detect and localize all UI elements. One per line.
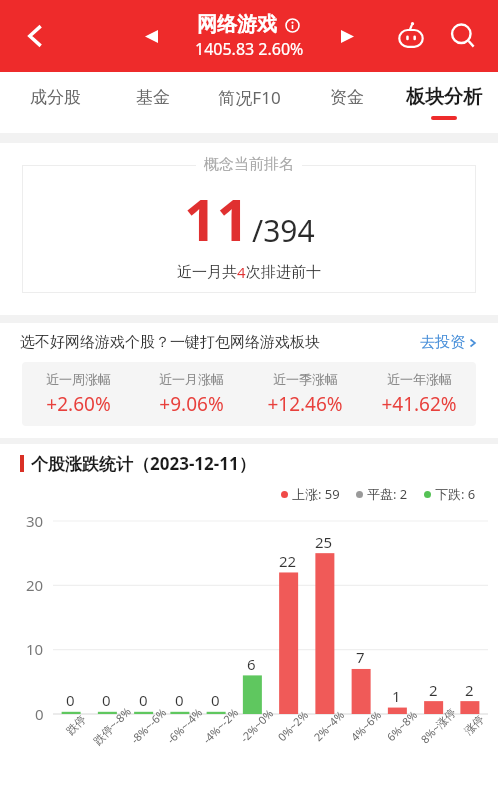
staticText: 上涨: 59: [292, 485, 340, 503]
button[interactable]: Previous sector: [131, 16, 171, 56]
staticText: +9.06%: [159, 391, 224, 417]
staticText: 简况F10: [218, 86, 281, 109]
button[interactable]: Next sector: [327, 16, 367, 56]
staticText: 0: [35, 704, 44, 724]
staticText: -6%~-4%: [163, 704, 206, 747]
staticText: 近一月共: [177, 263, 237, 282]
staticText: 20: [26, 575, 44, 595]
staticText: 跌停~-8%: [90, 703, 134, 748]
button[interactable]: 板块分析: [395, 72, 492, 133]
button[interactable]: 简况F10: [201, 72, 298, 133]
staticText: 成分股: [30, 87, 81, 108]
staticText: 10: [26, 639, 44, 659]
button[interactable]: 资金: [298, 72, 395, 133]
staticText: +2.60%: [46, 391, 111, 417]
staticText: +41.62%: [381, 391, 457, 417]
staticText: 2: [465, 680, 474, 700]
staticText: 下跌: 6: [435, 485, 476, 503]
staticText: 0: [139, 690, 148, 710]
staticText: 近一周涨幅: [46, 371, 111, 387]
staticText: 0: [211, 690, 220, 710]
staticText: 7: [356, 647, 365, 667]
button[interactable]: 选不好网络游戏个股？一键打包网络游戏板块: [20, 333, 478, 352]
button[interactable]: Search: [440, 13, 486, 59]
staticText: 2: [429, 680, 438, 700]
staticText: 0: [66, 690, 75, 710]
staticText: 4%~6%: [347, 707, 385, 744]
staticText: 近一月涨幅: [159, 371, 224, 387]
staticText: 1405.83 2.60%: [195, 38, 304, 60]
staticText: 6%~8%: [383, 707, 421, 744]
staticText: 个股涨跌统计（2023-12-11）: [31, 452, 256, 475]
button[interactable]: 基金: [104, 72, 201, 133]
staticText: 0: [175, 690, 184, 710]
staticText: 跌停: [63, 712, 89, 738]
staticText: 基金: [136, 87, 170, 108]
staticText: +12.46%: [267, 391, 343, 417]
staticText: 次排进前十: [246, 263, 321, 282]
staticText: 0%~2%: [274, 707, 312, 744]
staticText: 4: [237, 262, 246, 282]
staticText: 25: [315, 532, 333, 552]
staticText: 板块分析: [406, 85, 482, 109]
button[interactable]: Sector info: [282, 15, 302, 35]
staticText: 近一年涨幅: [387, 371, 452, 387]
button[interactable]: Back: [10, 10, 62, 62]
staticText: -4%~-2%: [199, 704, 242, 747]
staticText: 1: [392, 686, 401, 706]
staticText: /394: [252, 210, 315, 251]
button[interactable]: 成分股: [6, 72, 104, 133]
staticText: 6: [247, 654, 256, 674]
staticText: 0: [102, 690, 111, 710]
staticText: 22: [279, 551, 297, 571]
staticText: 去投资: [420, 333, 465, 352]
staticText: 资金: [330, 87, 364, 108]
button[interactable]: AI assistant: [388, 13, 434, 59]
staticText: 概念当前排名: [204, 155, 294, 174]
staticText: -2%~0%: [237, 706, 276, 745]
staticText: 网络游戏: [197, 12, 277, 37]
staticText: 2%~4%: [310, 707, 348, 744]
staticText: -8%~-6%: [127, 704, 170, 747]
staticText: 30: [26, 511, 44, 531]
staticText: 近一季涨幅: [273, 371, 338, 387]
staticText: 涨停: [461, 712, 487, 738]
staticText: 8%~涨停: [417, 705, 459, 746]
staticText: 11: [184, 180, 250, 258]
staticText: 选不好网络游戏个股？一键打包网络游戏板块: [20, 333, 320, 352]
staticText: 平盘: 2: [367, 485, 408, 503]
